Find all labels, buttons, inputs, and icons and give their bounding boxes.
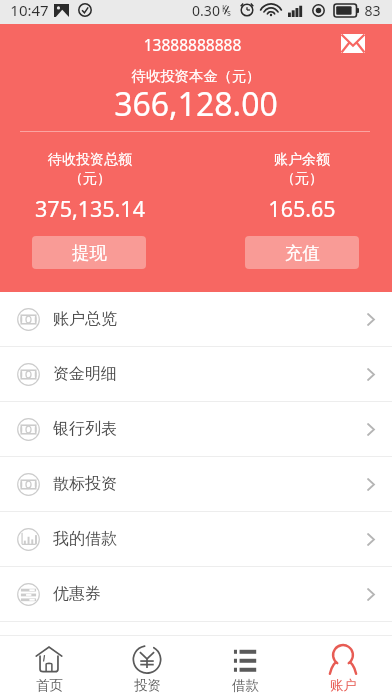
staticText: 83	[364, 1, 381, 20]
button[interactable]: 首页	[0, 636, 98, 696]
button[interactable]: 资金明细	[0, 347, 392, 402]
staticText: 账户	[330, 677, 357, 694]
button[interactable]: 账户	[294, 636, 392, 696]
button[interactable]: 提现	[32, 236, 146, 269]
staticText: 13888888888	[0, 34, 385, 55]
button[interactable]: Messages	[334, 25, 371, 62]
button[interactable]: 散标投资	[0, 457, 392, 512]
button[interactable]: 充值	[245, 236, 359, 269]
staticText: 账户余额	[274, 151, 330, 169]
staticText: 375,135.14	[35, 194, 145, 223]
button[interactable]: 优惠券	[0, 567, 392, 622]
staticText: 首页	[36, 677, 63, 694]
staticText: 充值	[285, 242, 320, 264]
staticText: 我的借款	[53, 529, 117, 549]
staticText: 投资	[134, 677, 161, 694]
staticText: s	[227, 7, 231, 18]
button[interactable]: 账户总览	[0, 292, 392, 347]
button[interactable]: 我的借款	[0, 512, 392, 567]
staticText: 待收投资本金（元）	[0, 67, 392, 85]
staticText: 借款	[232, 677, 259, 694]
staticText: 散标投资	[53, 474, 117, 494]
button[interactable]: 投资	[98, 636, 196, 696]
staticText: 账户总览	[53, 309, 117, 329]
staticText: 银行列表	[53, 419, 117, 439]
staticText: （元）	[69, 170, 111, 188]
staticText: 提现	[72, 242, 107, 264]
staticText: 待收投资总额	[48, 151, 132, 169]
staticText: 165.65	[268, 194, 336, 223]
staticText: 资金明细	[53, 364, 117, 384]
staticText: 0.30	[192, 1, 220, 20]
staticText: 优惠券	[53, 584, 101, 604]
button[interactable]: 借款	[196, 636, 294, 696]
staticText: K	[222, 3, 227, 14]
button[interactable]: 银行列表	[0, 402, 392, 457]
staticText: （元）	[281, 170, 323, 188]
staticText: 366,128.00	[0, 82, 392, 126]
staticText: 10:47	[10, 0, 49, 20]
